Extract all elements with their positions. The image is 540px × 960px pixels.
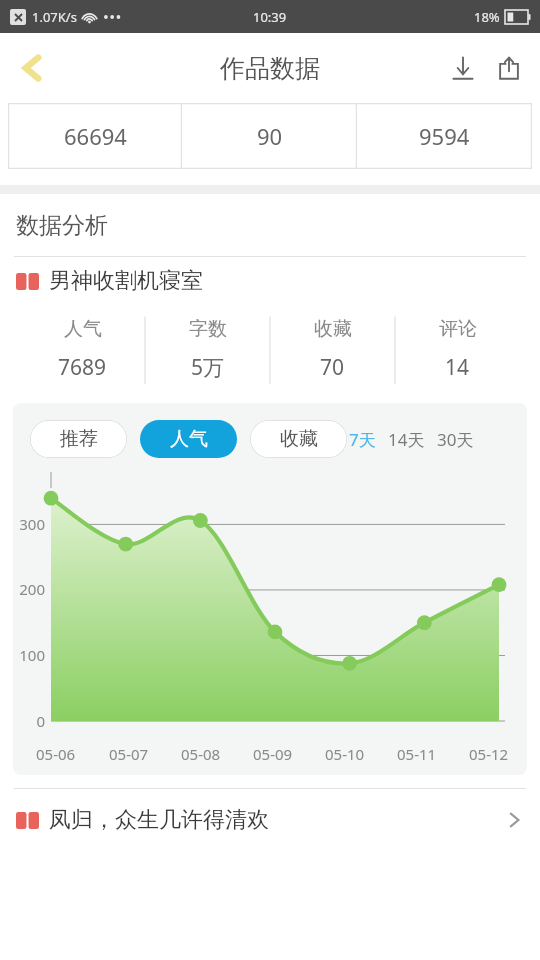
staticText: 05-06 (36, 744, 76, 764)
staticText: 30天 (437, 428, 474, 451)
staticText: 收藏 (280, 427, 318, 451)
staticText: 5万 (191, 353, 225, 382)
staticText: 人气 (64, 317, 102, 341)
staticText: 14天 (388, 428, 425, 451)
staticText: 70 (320, 353, 345, 382)
staticText: 0 (36, 711, 45, 731)
staticText: 作品数据 (220, 53, 320, 84)
staticText: 凤归，众生几许得清欢 (49, 806, 504, 834)
staticText: 100 (19, 645, 45, 665)
button[interactable]: Share (486, 45, 532, 91)
staticText: 14 (445, 353, 470, 382)
button[interactable]: Back (6, 42, 58, 94)
staticText: 评论 (439, 317, 477, 341)
staticText: 字数 (189, 317, 227, 341)
staticText: 05-12 (469, 744, 509, 764)
button[interactable]: 30天 (435, 428, 476, 451)
button[interactable]: 收藏 (250, 420, 347, 458)
button[interactable]: 9594 (357, 103, 532, 169)
button[interactable]: 7天 (347, 428, 378, 451)
button[interactable]: 推荐 (30, 420, 127, 458)
staticText: 人气 (170, 427, 208, 451)
button[interactable]: 男神收割机寝室 (16, 257, 540, 305)
staticText: 7689 (58, 353, 107, 382)
button[interactable]: 14天 (386, 428, 427, 451)
staticText: 18% (474, 8, 500, 26)
button[interactable]: 66694 (8, 103, 182, 169)
staticText: 10:39 (253, 8, 287, 26)
staticText: 90 (257, 121, 283, 151)
staticText: 05-09 (253, 744, 293, 764)
staticText: 9594 (419, 121, 470, 151)
staticText: 7天 (349, 428, 376, 451)
button[interactable]: 90 (182, 103, 357, 169)
staticText: 66694 (64, 121, 127, 151)
staticText: 300 (19, 514, 45, 534)
staticText: 男神收割机寝室 (49, 267, 203, 295)
staticText: 05-07 (109, 744, 149, 764)
staticText: 推荐 (60, 427, 98, 451)
button[interactable]: 人气 (140, 420, 237, 458)
staticText: 05-11 (397, 744, 437, 764)
staticText: 05-10 (325, 744, 365, 764)
staticText: 数据分析 (16, 211, 108, 240)
button[interactable]: Download (440, 45, 486, 91)
staticText: 1.07K/s (32, 8, 77, 26)
staticText: 200 (19, 579, 45, 599)
button[interactable]: 凤归，众生几许得清欢 (16, 789, 524, 851)
staticText: 收藏 (314, 317, 352, 341)
staticText: 05-08 (181, 744, 221, 764)
